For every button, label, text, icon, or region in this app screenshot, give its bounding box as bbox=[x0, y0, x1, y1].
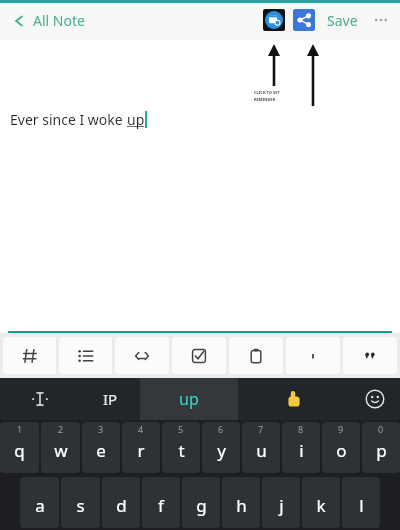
button[interactable]: Quote bbox=[343, 337, 397, 374]
staticText: 4 bbox=[138, 423, 144, 435]
button[interactable]: 4 bbox=[122, 422, 160, 473]
staticText: t bbox=[178, 439, 185, 462]
button[interactable]: k bbox=[302, 477, 340, 528]
staticText: CLICK TO SET REMINDER bbox=[254, 90, 280, 102]
staticText: a bbox=[35, 494, 45, 517]
staticText: Ever since I woke bbox=[10, 110, 127, 129]
button[interactable]: More options bbox=[370, 9, 392, 31]
button[interactable]: 8 bbox=[282, 422, 320, 473]
staticText: 7 bbox=[258, 423, 264, 435]
staticText: w bbox=[54, 439, 68, 462]
button[interactable]: 2 bbox=[41, 422, 80, 473]
button[interactable]: up bbox=[140, 378, 238, 420]
button[interactable]: IP bbox=[80, 378, 140, 420]
button[interactable]: Checkbox bbox=[172, 337, 226, 374]
button[interactable]: 5 bbox=[162, 422, 200, 473]
staticText: IP bbox=[103, 389, 118, 409]
button[interactable]: Share bbox=[293, 9, 315, 31]
staticText: 2 bbox=[58, 423, 64, 435]
button[interactable]: All Note bbox=[12, 11, 91, 30]
staticText: Save bbox=[327, 11, 358, 30]
button[interactable]: s bbox=[61, 477, 100, 528]
staticText: h bbox=[236, 494, 247, 517]
staticText: 3 bbox=[98, 423, 104, 435]
button[interactable]: a bbox=[20, 477, 59, 528]
button[interactable]: Divider bbox=[286, 337, 340, 374]
button[interactable]: l bbox=[342, 477, 380, 528]
staticText: j bbox=[279, 494, 284, 517]
staticText: s bbox=[76, 494, 85, 517]
staticText: 0 bbox=[378, 423, 384, 435]
button[interactable]: Save bbox=[325, 7, 360, 34]
button[interactable]: 6 bbox=[202, 422, 240, 473]
staticText: i bbox=[299, 439, 304, 462]
staticText: f bbox=[158, 494, 164, 517]
button[interactable]: 0 bbox=[362, 422, 400, 473]
button[interactable]: f bbox=[142, 477, 180, 528]
button[interactable]: 3 bbox=[82, 422, 120, 473]
staticText: 5 bbox=[178, 423, 184, 435]
button[interactable]: Heading bbox=[3, 337, 56, 374]
button[interactable]: Set reminder bbox=[263, 9, 285, 31]
staticText: 8 bbox=[298, 423, 304, 435]
staticText: up bbox=[179, 388, 199, 410]
button[interactable]: 9 bbox=[322, 422, 360, 473]
staticText: g bbox=[196, 494, 207, 517]
button[interactable]: j bbox=[262, 477, 300, 528]
button[interactable]: Code bbox=[115, 337, 169, 374]
staticText: q bbox=[14, 439, 25, 462]
button[interactable]: 7 bbox=[242, 422, 280, 473]
staticText: o bbox=[336, 439, 347, 462]
staticText: d bbox=[116, 494, 127, 517]
staticText: e bbox=[96, 439, 106, 462]
staticText: k bbox=[316, 494, 326, 517]
button[interactable]: 1 bbox=[0, 422, 39, 473]
button[interactable]: Text cursor bbox=[0, 378, 80, 420]
staticText: All Note bbox=[33, 11, 85, 30]
button[interactable]: Emoji bbox=[350, 378, 400, 420]
staticText: p bbox=[376, 439, 387, 462]
staticText: up bbox=[127, 110, 145, 129]
staticText: u bbox=[256, 439, 267, 462]
staticText: 9 bbox=[338, 423, 344, 435]
button[interactable]: Clipboard bbox=[229, 337, 283, 374]
button[interactable]: Bullet list bbox=[59, 337, 112, 374]
button[interactable]: Stickers bbox=[238, 378, 350, 420]
staticText: 1 bbox=[17, 423, 23, 435]
staticText: r bbox=[137, 439, 145, 462]
staticText: 6 bbox=[218, 423, 224, 435]
staticText: l bbox=[359, 494, 364, 517]
button[interactable]: g bbox=[182, 477, 220, 528]
staticText: y bbox=[217, 439, 226, 462]
button[interactable]: d bbox=[102, 477, 140, 528]
button[interactable]: h bbox=[222, 477, 260, 528]
